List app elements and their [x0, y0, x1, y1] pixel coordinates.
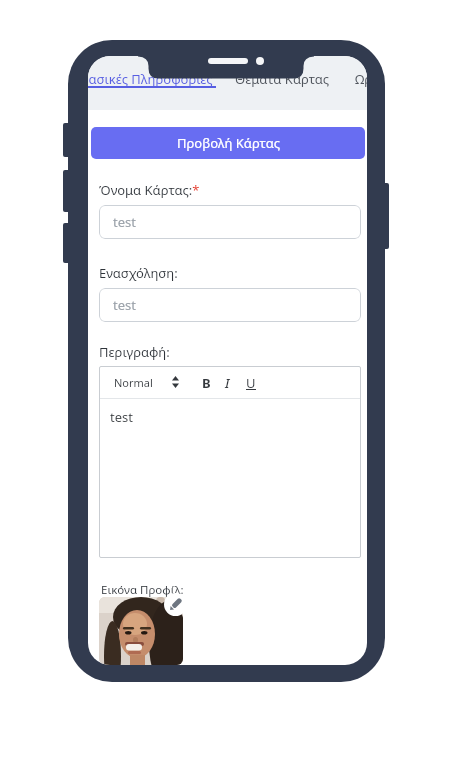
- button[interactable]: test: [99, 288, 361, 322]
- button[interactable]: Θέματα Κάρτας: [235, 70, 330, 88]
- button[interactable]: Προβολή Κάρτας: [91, 127, 365, 159]
- staticText: Όνομα Κάρτας:*: [99, 181, 200, 199]
- staticText: test: [110, 408, 133, 426]
- staticText: U: [246, 374, 256, 392]
- staticText: Normal: [114, 375, 153, 390]
- staticText: Ενασχόληση:: [99, 264, 178, 282]
- button[interactable]: test: [99, 205, 361, 239]
- staticText: Ωράριο: [355, 70, 367, 88]
- staticText: test: [113, 296, 136, 314]
- button[interactable]: Βασικές Πληροφορίες: [88, 70, 213, 88]
- button[interactable]: B: [202, 374, 211, 392]
- button[interactable]: [164, 593, 187, 616]
- button[interactable]: Normal: [114, 375, 153, 390]
- staticText: test: [113, 213, 136, 231]
- staticText: B: [202, 374, 211, 392]
- staticText: Βασικές Πληροφορίες: [88, 70, 213, 88]
- button[interactable]: U: [246, 374, 256, 392]
- button[interactable]: Ωράριο: [355, 70, 367, 88]
- staticText: Εικόνα Προφίλ:: [101, 582, 184, 598]
- button[interactable]: [99, 597, 183, 665]
- staticText: I: [225, 374, 230, 392]
- button[interactable]: I: [225, 374, 230, 392]
- staticText: Περιγραφή:: [99, 343, 170, 361]
- staticText: Θέματα Κάρτας: [235, 70, 330, 88]
- staticText: Προβολή Κάρτας: [177, 134, 280, 152]
